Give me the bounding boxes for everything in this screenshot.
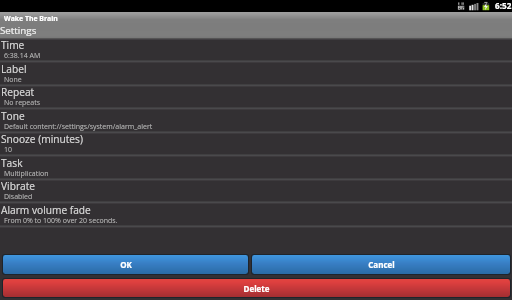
- staticText: Alarm volume fade: [1, 203, 91, 217]
- button[interactable]: Delete: [2, 278, 511, 298]
- staticText: From 0% to 100% over 20 seconds.: [4, 216, 118, 226]
- staticText: Time: [1, 38, 25, 52]
- staticText: Default content://settings/system/alarm_…: [4, 122, 153, 132]
- button[interactable]: Task: [0, 156, 512, 180]
- staticText: 6:38.14 AM: [4, 51, 41, 61]
- staticText: Tone: [1, 109, 25, 123]
- button[interactable]: OK: [2, 254, 249, 275]
- staticText: Settings: [0, 24, 37, 37]
- staticText: 10: [4, 145, 13, 155]
- staticText: Disabled: [4, 192, 33, 202]
- staticText: Wake The Brain: [4, 14, 58, 23]
- button[interactable]: Repeat: [0, 85, 512, 109]
- staticText: No repeats: [4, 98, 41, 108]
- staticText: 6:52: [495, 0, 512, 11]
- staticText: Cancel: [368, 259, 395, 270]
- button[interactable]: Alarm volume fade: [0, 203, 512, 227]
- staticText: Task: [1, 156, 23, 170]
- button[interactable]: Tone: [0, 109, 512, 133]
- staticText: OK: [120, 259, 132, 270]
- staticText: Snooze (minutes): [1, 132, 83, 146]
- button[interactable]: Label: [0, 62, 512, 86]
- button[interactable]: Time: [0, 38, 512, 62]
- staticText: None: [4, 75, 22, 85]
- staticText: Multiplication: [4, 169, 49, 179]
- staticText: Repeat: [1, 85, 35, 99]
- button[interactable]: Cancel: [251, 254, 511, 275]
- staticText: Vibrate: [1, 179, 36, 193]
- staticText: Label: [1, 62, 27, 76]
- button[interactable]: Vibrate: [0, 179, 512, 203]
- button[interactable]: Snooze (minutes): [0, 132, 512, 156]
- staticText: Delete: [243, 283, 270, 294]
